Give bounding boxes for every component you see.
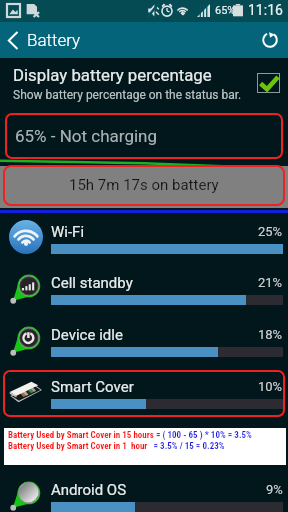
button[interactable]: 65% - Not charging: [5, 113, 283, 159]
button[interactable]: Smart Cover: [0, 368, 288, 419]
staticText: 25%: [258, 224, 283, 239]
button[interactable]: Cell standby: [0, 264, 288, 315]
staticText: 65%: [215, 4, 236, 17]
staticText: Show battery percentage on the status ba…: [13, 88, 242, 102]
button[interactable]: Refresh: [252, 22, 288, 58]
button[interactable]: Device idle: [0, 316, 288, 367]
staticText: 18%: [258, 327, 283, 342]
staticText: Battery: [27, 30, 81, 50]
staticText: 11:16: [248, 2, 283, 18]
button[interactable]: [3, 165, 285, 206]
button[interactable]: Battery: [0, 22, 288, 58]
staticText: 15h 7m 17s on battery: [69, 176, 219, 194]
button[interactable]: Wi-Fi: [0, 213, 288, 264]
staticText: 65% - Not charging: [15, 126, 158, 146]
staticText: Battery Used by Smart Cover in 1 hour = …: [8, 441, 225, 452]
staticText: Device idle: [51, 326, 123, 344]
staticText: 21%: [258, 275, 283, 290]
staticText: Smart Cover: [51, 378, 134, 396]
staticText: Android OS: [51, 481, 127, 499]
button[interactable]: Android OS: [0, 471, 288, 512]
staticText: 10%: [258, 379, 283, 394]
staticText: 9%: [266, 482, 283, 497]
staticText: Wi-Fi: [51, 223, 85, 241]
staticText: Battery Used by Smart Cover in 15 hours …: [8, 430, 252, 441]
button[interactable]: Display battery percentage: [0, 58, 288, 113]
staticText: Cell standby: [51, 274, 133, 292]
staticText: Display battery percentage: [13, 65, 212, 85]
